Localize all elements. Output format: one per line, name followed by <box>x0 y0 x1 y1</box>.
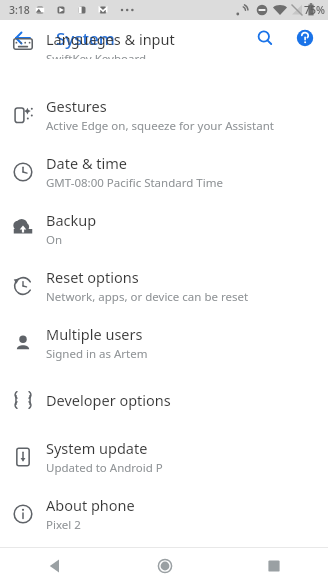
staticText: Multiple users <box>46 324 143 344</box>
staticText: Pixel 2 <box>46 517 81 533</box>
button[interactable]: Languages & input <box>0 56 328 86</box>
staticText: GMT-08:00 Pacific Standard Time <box>46 175 223 191</box>
button[interactable]: Developer options <box>0 371 328 428</box>
button[interactable]: Date & time <box>0 143 328 200</box>
button[interactable]: System update <box>0 428 328 485</box>
staticText: Network, apps, or device can be reset <box>46 289 249 305</box>
staticText: Active Edge on, squeeze for your Assista… <box>46 118 274 134</box>
button[interactable]: Multiple users <box>0 314 328 371</box>
staticText: SwiftKey Keyboard <box>46 51 146 59</box>
staticText: Gestures <box>46 96 107 116</box>
staticText: 75% <box>304 3 325 17</box>
staticText: About phone <box>46 495 135 515</box>
staticText: Developer options <box>46 390 171 410</box>
staticText: Date & time <box>46 153 127 173</box>
staticText: Backup <box>46 210 97 230</box>
staticText: 3:18 <box>9 3 30 17</box>
staticText: Languages & input <box>46 29 175 49</box>
button[interactable]: Help <box>290 23 320 53</box>
button[interactable]: Search <box>250 23 280 53</box>
staticText: Signed in as Artem <box>46 346 148 362</box>
button[interactable]: Recents <box>219 548 328 584</box>
staticText: System <box>56 27 115 50</box>
button[interactable]: Back <box>0 548 110 584</box>
staticText: Updated to Android P <box>46 460 163 476</box>
button[interactable]: Back <box>8 23 38 53</box>
button[interactable]: Home <box>110 548 219 584</box>
staticText: System update <box>46 438 148 458</box>
button[interactable]: Reset options <box>0 257 328 314</box>
staticText: On <box>46 232 63 248</box>
staticText: Reset options <box>46 267 139 287</box>
button[interactable]: About phone <box>0 485 328 542</box>
button[interactable]: Backup <box>0 200 328 257</box>
button[interactable]: Gestures <box>0 86 328 143</box>
